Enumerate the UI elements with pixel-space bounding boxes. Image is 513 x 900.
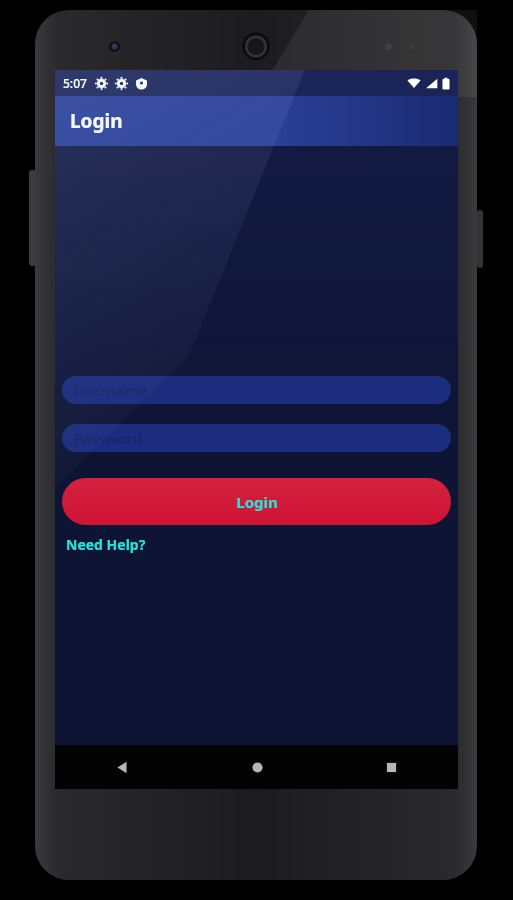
staticText: 5:07 — [63, 75, 87, 91]
staticText: Login — [70, 108, 123, 134]
staticText: Need Help? — [66, 535, 146, 554]
staticText: Password — [73, 428, 142, 448]
button[interactable]: Username — [62, 376, 451, 404]
button[interactable]: Recents — [324, 745, 458, 789]
button[interactable]: Password — [62, 424, 451, 452]
staticText: Login — [236, 492, 278, 512]
button[interactable]: Back — [55, 745, 190, 789]
button[interactable]: Need Help? — [62, 533, 152, 556]
staticText: Username — [73, 380, 148, 400]
button[interactable]: Login — [62, 478, 451, 525]
button[interactable]: Home — [190, 745, 324, 789]
